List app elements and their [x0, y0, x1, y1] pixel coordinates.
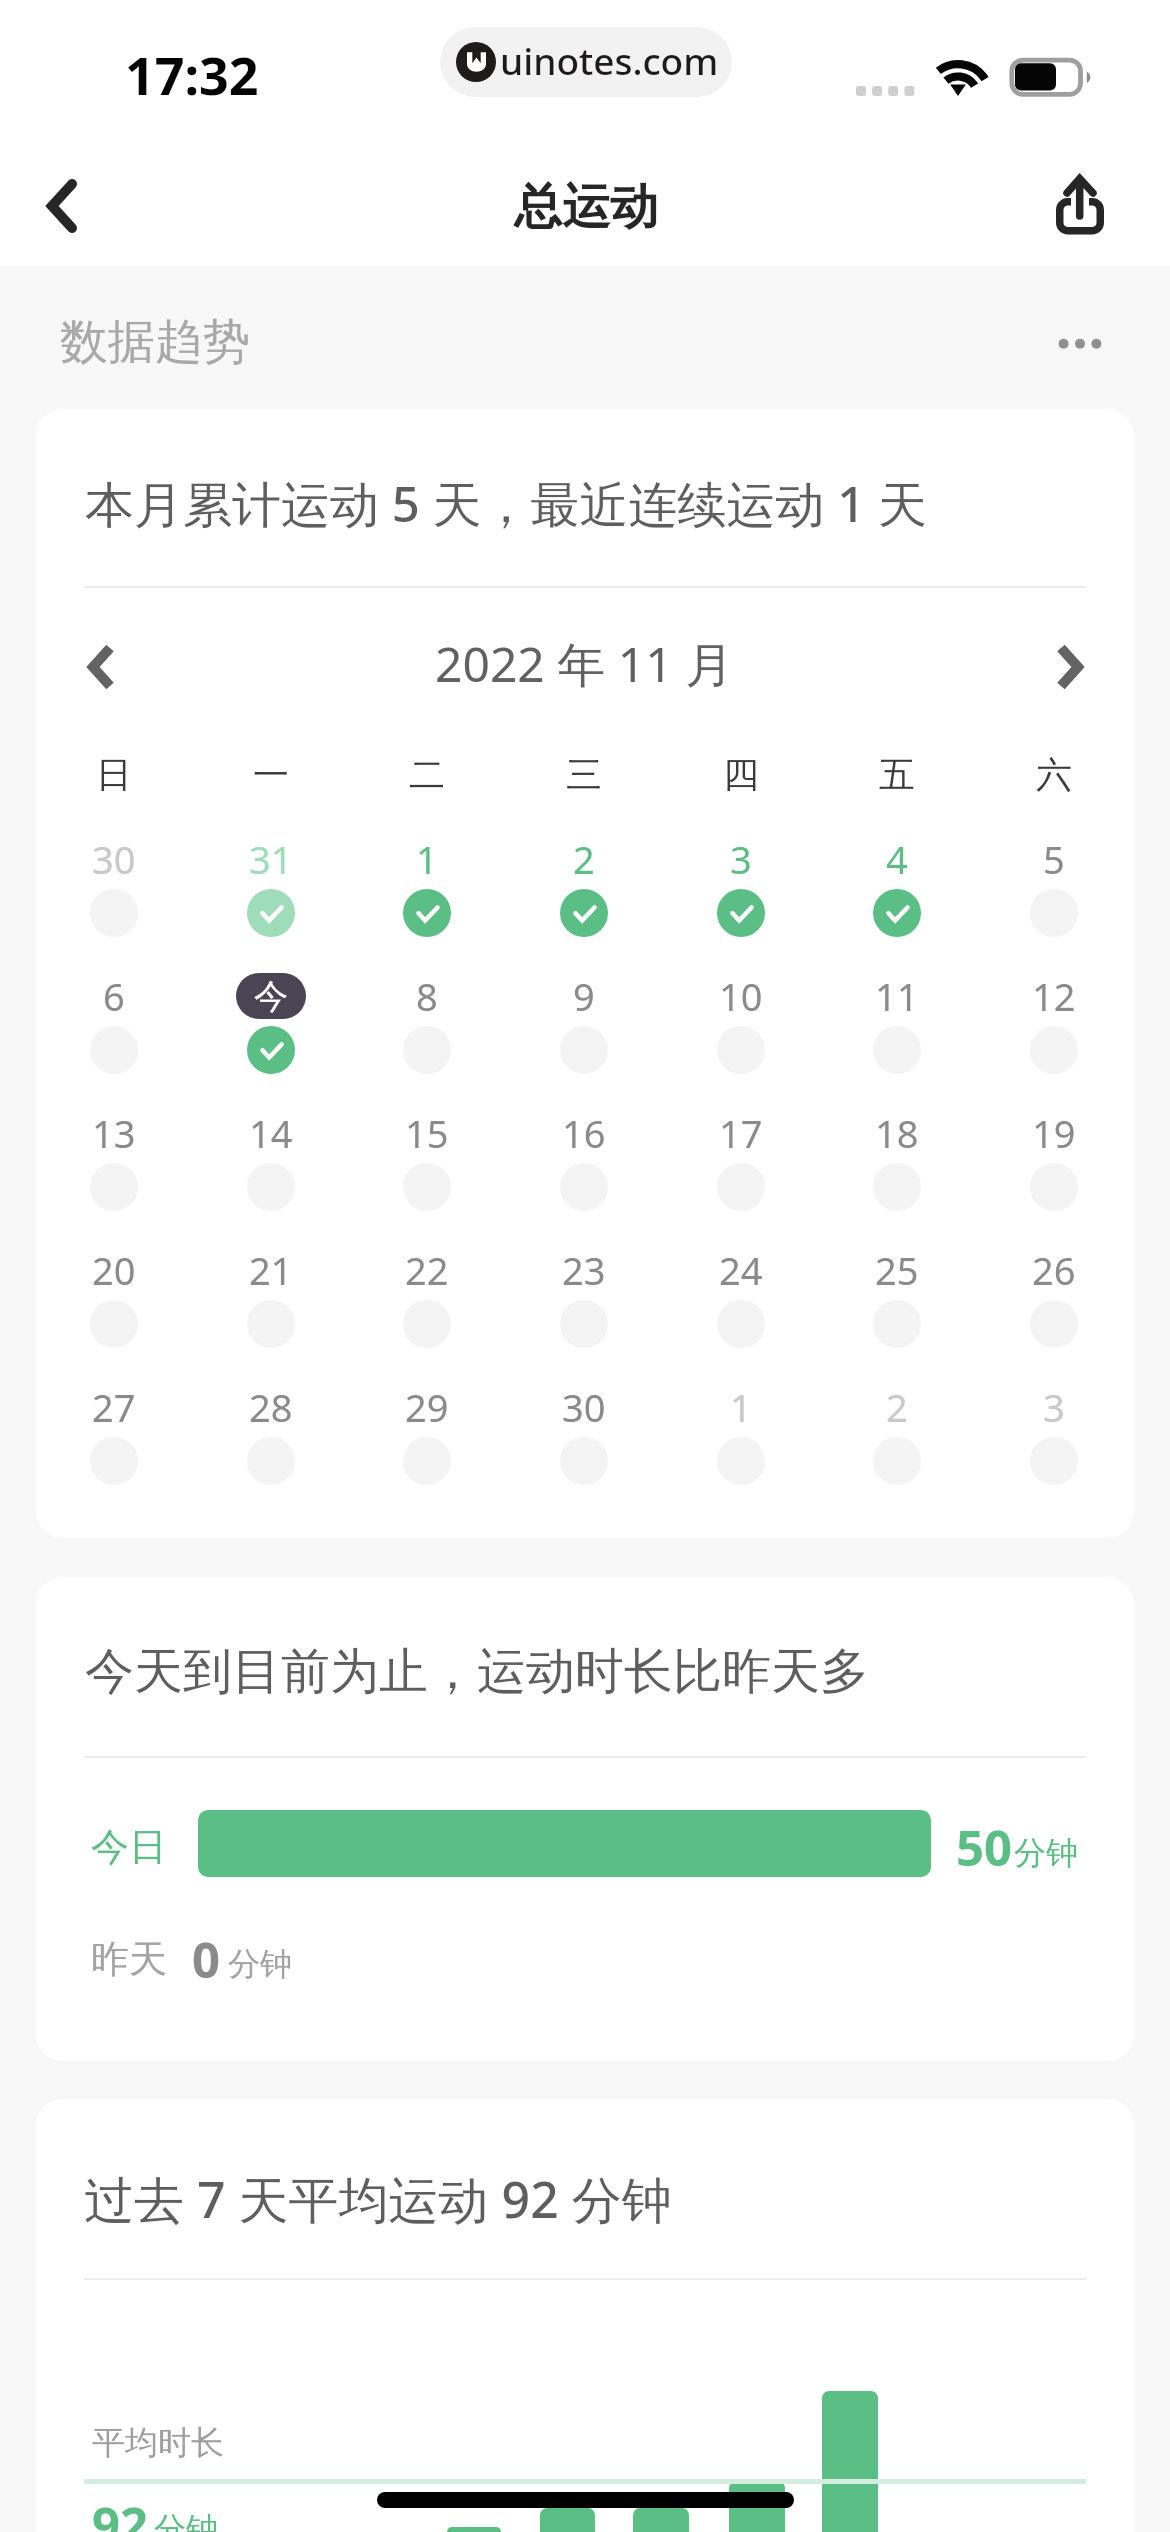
staticText: 本月累计运动 5 天，最近连续运动 1 天: [85, 470, 928, 537]
staticText: 25: [875, 1244, 919, 1296]
staticText: 四: [723, 752, 759, 797]
staticText: 5: [1043, 833, 1065, 885]
staticText: 2: [573, 833, 595, 885]
staticText: 日: [96, 752, 132, 797]
button[interactable]: 28: [201, 1367, 341, 1489]
staticText: 22: [405, 1244, 449, 1296]
staticText: 4: [886, 833, 908, 885]
staticText: 16: [562, 1107, 606, 1159]
button[interactable]: 18: [827, 1093, 967, 1215]
staticText: 20: [92, 1244, 136, 1296]
staticText: 18: [875, 1107, 919, 1159]
staticText: 24: [719, 1244, 763, 1296]
button[interactable]: 24: [671, 1230, 811, 1352]
staticText: 平均时长: [92, 2422, 224, 2464]
staticText: 9: [573, 970, 595, 1022]
staticText: 2: [886, 1381, 908, 1433]
staticText: 29: [405, 1381, 449, 1433]
staticText: uinotes.com: [500, 35, 719, 85]
button[interactable]: 3: [671, 819, 811, 941]
button[interactable]: 12: [984, 956, 1124, 1078]
staticText: 分钟: [228, 1944, 292, 1984]
staticText: 14: [249, 1107, 293, 1159]
button[interactable]: 31: [201, 819, 341, 941]
button[interactable]: Next month: [1033, 631, 1105, 703]
staticText: 3: [1043, 1381, 1065, 1433]
staticText: 17: [719, 1107, 763, 1159]
staticText: 二: [409, 752, 445, 797]
button[interactable]: 1: [671, 1367, 811, 1489]
staticText: 31: [249, 833, 293, 885]
staticText: 17:32: [125, 39, 259, 110]
staticText: 19: [1032, 1107, 1076, 1159]
staticText: 2022 年 11 月: [435, 631, 734, 697]
staticText: 21: [249, 1244, 293, 1296]
button[interactable]: 22: [357, 1230, 497, 1352]
staticText: 11: [875, 970, 919, 1022]
button[interactable]: 20: [44, 1230, 184, 1352]
staticText: 分钟: [154, 2509, 218, 2532]
button[interactable]: 29: [357, 1367, 497, 1489]
button[interactable]: 3: [984, 1367, 1124, 1489]
staticText: 六: [1036, 752, 1072, 797]
button[interactable]: Previous month: [65, 631, 137, 703]
staticText: 26: [1032, 1244, 1076, 1296]
button[interactable]: 6: [44, 956, 184, 1078]
button[interactable]: 9: [514, 956, 654, 1078]
button[interactable]: 19: [984, 1093, 1124, 1215]
button[interactable]: Back: [18, 162, 106, 250]
staticText: 3: [730, 833, 752, 885]
staticText: 五: [879, 752, 915, 797]
staticText: 50: [956, 1814, 1013, 1881]
button[interactable]: 21: [201, 1230, 341, 1352]
button[interactable]: 25: [827, 1230, 967, 1352]
button[interactable]: 8: [357, 956, 497, 1078]
button[interactable]: Share: [1048, 169, 1112, 243]
staticText: 昨天: [91, 1935, 167, 1983]
staticText: 分钟: [1014, 1833, 1078, 1873]
button[interactable]: More options: [1043, 318, 1115, 370]
staticText: 30: [92, 833, 136, 885]
staticText: 27: [92, 1381, 136, 1433]
staticText: 今日: [91, 1823, 167, 1871]
staticText: 今天到目前为止，运动时长比昨天多: [85, 1641, 869, 1703]
staticText: 13: [92, 1107, 136, 1159]
staticText: 15: [405, 1107, 449, 1159]
staticText: 1: [416, 833, 438, 885]
staticText: 数据趋势: [60, 312, 250, 372]
button[interactable]: 10: [671, 956, 811, 1078]
staticText: 23: [562, 1244, 606, 1296]
staticText: 10: [719, 970, 763, 1022]
staticText: 12: [1032, 970, 1076, 1022]
button[interactable]: 1: [357, 819, 497, 941]
staticText: 1: [730, 1381, 752, 1433]
staticText: 92: [92, 2491, 149, 2532]
button[interactable]: 16: [514, 1093, 654, 1215]
button[interactable]: 30: [514, 1367, 654, 1489]
staticText: 今: [254, 975, 288, 1018]
button[interactable]: 今: [201, 956, 341, 1078]
staticText: 8: [416, 970, 438, 1022]
button[interactable]: 2: [514, 819, 654, 941]
button[interactable]: 23: [514, 1230, 654, 1352]
button[interactable]: 14: [201, 1093, 341, 1215]
button[interactable]: 27: [44, 1367, 184, 1489]
button[interactable]: 26: [984, 1230, 1124, 1352]
staticText: 30: [562, 1381, 606, 1433]
button[interactable]: 30: [44, 819, 184, 941]
button[interactable]: 4: [827, 819, 967, 941]
staticText: 一: [253, 752, 289, 797]
staticText: 28: [249, 1381, 293, 1433]
button[interactable]: 5: [984, 819, 1124, 941]
button[interactable]: 17: [671, 1093, 811, 1215]
button[interactable]: 11: [827, 956, 967, 1078]
staticText: 0: [192, 1926, 221, 1993]
staticText: 总运动: [514, 177, 658, 237]
button[interactable]: 15: [357, 1093, 497, 1215]
button[interactable]: 13: [44, 1093, 184, 1215]
staticText: 6: [103, 970, 125, 1022]
staticText: 三: [566, 752, 602, 797]
staticText: 过去 7 天平均运动 92 分钟: [84, 2165, 672, 2233]
button[interactable]: 2: [827, 1367, 967, 1489]
